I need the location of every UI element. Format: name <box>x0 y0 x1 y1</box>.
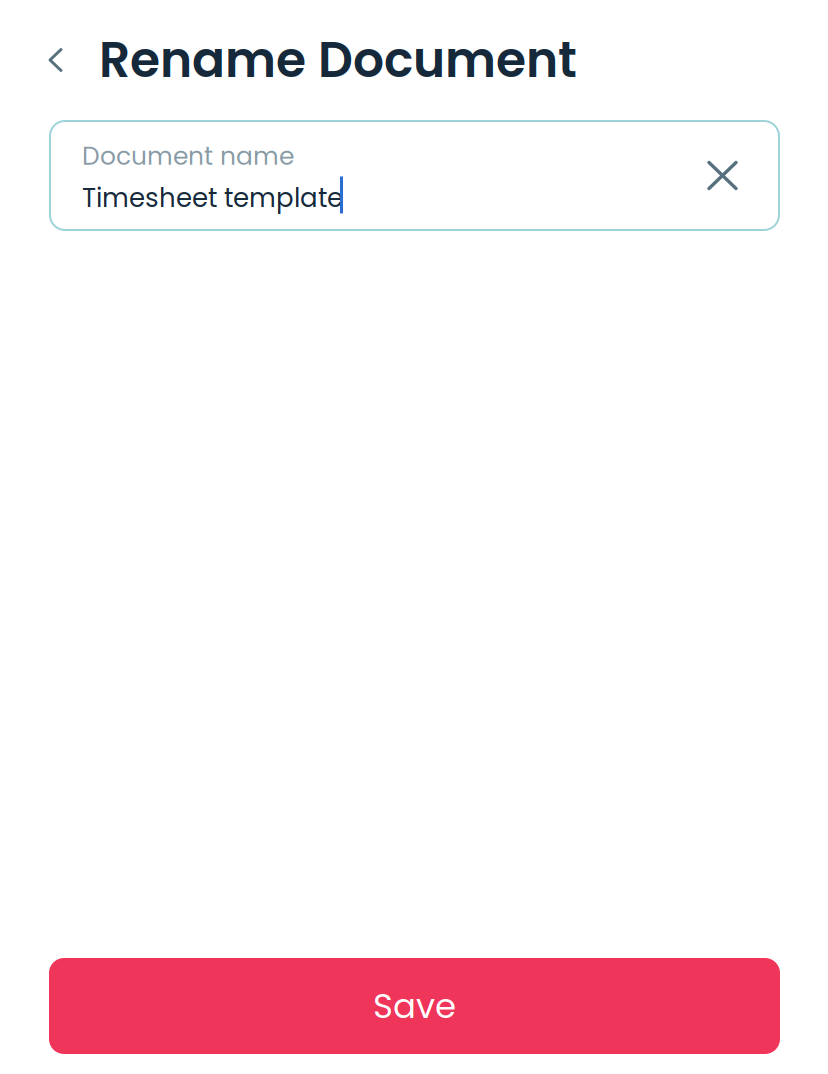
button[interactable]: Back <box>0 24 99 96</box>
staticText: Save <box>373 982 456 1030</box>
staticText: Document name <box>82 138 294 173</box>
staticText: Timesheet template <box>82 180 343 216</box>
button[interactable]: Clear text <box>689 142 756 208</box>
button[interactable]: Save <box>49 958 780 1054</box>
staticText: Rename Document <box>99 26 577 94</box>
